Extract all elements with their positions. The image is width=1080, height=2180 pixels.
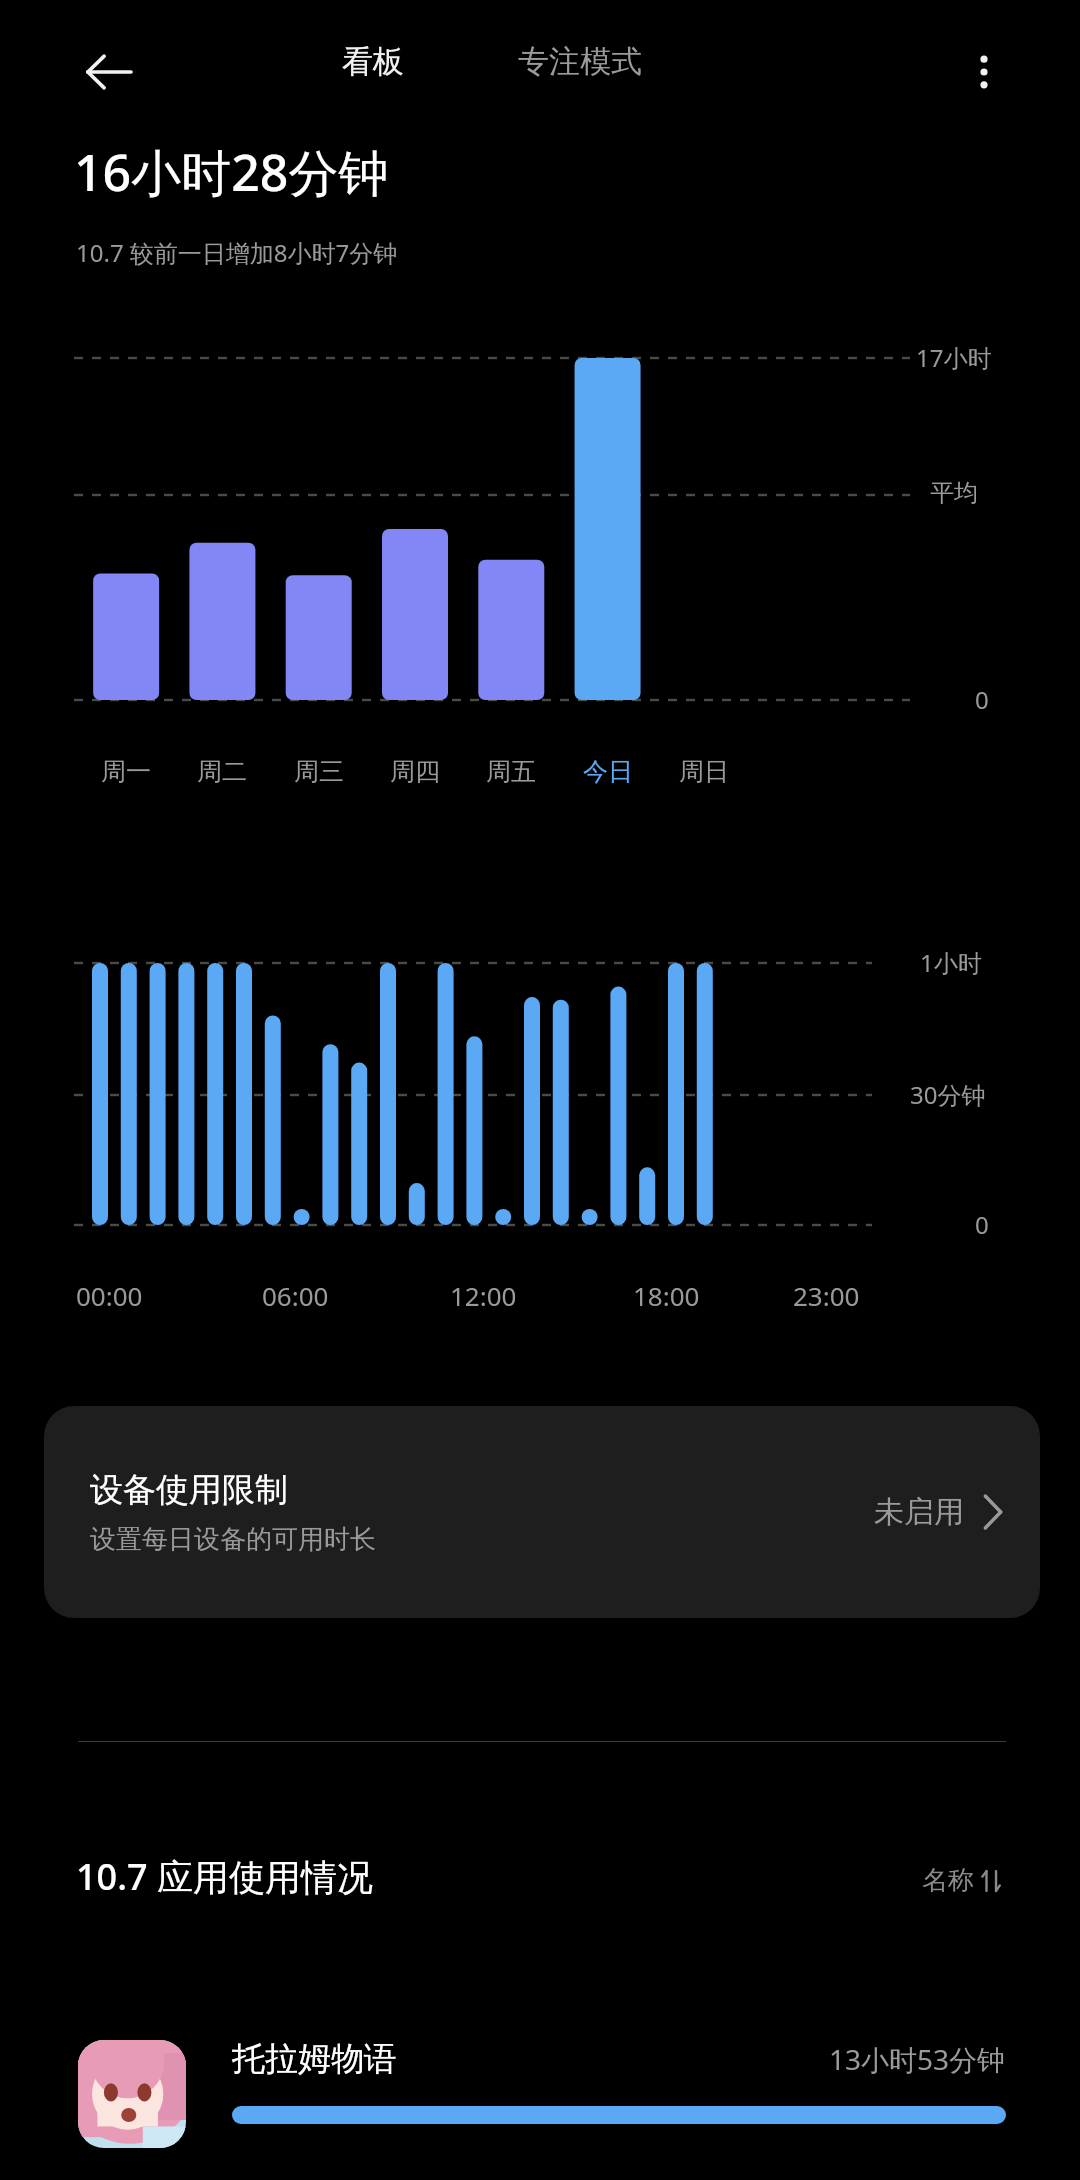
button[interactable]: 设备使用限制 — [44, 1406, 1040, 1618]
staticText: 00:00 — [76, 1278, 143, 1313]
button[interactable]: 今日 — [560, 745, 656, 797]
button[interactable]: 周一 — [78, 745, 174, 797]
staticText: 未启用 — [874, 1493, 964, 1531]
button[interactable]: Back — [62, 26, 154, 118]
staticText: 16小时28分钟 — [74, 138, 389, 206]
staticText: 23:00 — [793, 1278, 860, 1313]
staticText: 周五 — [486, 756, 536, 787]
staticText: 周二 — [197, 756, 247, 787]
staticText: 周三 — [294, 756, 344, 787]
staticText: 设置每日设备的可用时长 — [90, 1523, 376, 1556]
staticText: 托拉姆物语 — [232, 2038, 397, 2080]
button[interactable]: 周日 — [656, 745, 752, 797]
button[interactable]: 周三 — [271, 745, 367, 797]
staticText: 看板 — [342, 42, 404, 81]
staticText: 周日 — [679, 756, 729, 787]
staticText: 18:00 — [633, 1278, 700, 1313]
button[interactable]: 周四 — [367, 745, 463, 797]
staticText: 10.7 较前一日增加8小时7分钟 — [76, 236, 398, 269]
staticText: 0 — [975, 683, 989, 716]
staticText: 0 — [975, 1208, 989, 1241]
staticText: 周四 — [390, 756, 440, 787]
button[interactable]: 周五 — [463, 745, 559, 797]
staticText: 1小时 — [920, 946, 982, 979]
button[interactable]: 名称 — [916, 1860, 1006, 1901]
staticText: 12:00 — [450, 1278, 517, 1313]
staticText: 平均 — [930, 478, 978, 508]
button[interactable]: 看板 — [330, 34, 416, 89]
button[interactable]: 周二 — [174, 745, 270, 797]
staticText: 周一 — [101, 756, 151, 787]
button[interactable]: 托拉姆物语 — [0, 2020, 1080, 2180]
button[interactable]: More options — [938, 26, 1030, 118]
staticText: 30分钟 — [910, 1078, 986, 1111]
button[interactable]: 专注模式 — [506, 34, 654, 89]
staticText: 专注模式 — [518, 42, 642, 81]
staticText: 名称 — [922, 1864, 974, 1897]
staticText: 今日 — [583, 756, 633, 787]
staticText: 13小时53分钟 — [829, 2040, 1006, 2078]
staticText: 10.7 应用使用情况 — [76, 1852, 373, 1901]
staticText: 17小时 — [916, 341, 992, 374]
staticText: 设备使用限制 — [90, 1469, 288, 1511]
staticText: 06:00 — [262, 1278, 329, 1313]
